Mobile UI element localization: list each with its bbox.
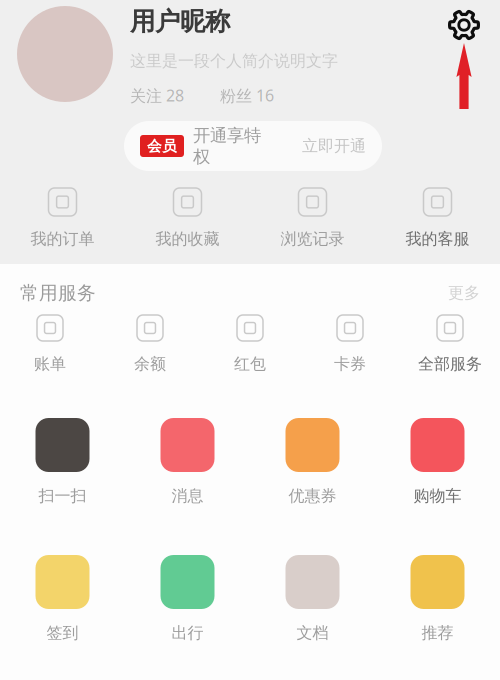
- button[interactable]: 余额: [100, 315, 200, 374]
- staticText: 我的收藏: [155, 229, 219, 249]
- staticText: 我的订单: [30, 229, 94, 249]
- staticText: 全部服务: [418, 354, 482, 374]
- staticText: 余额: [134, 354, 166, 374]
- staticText: 常用服务: [20, 281, 96, 304]
- staticText: 文档: [296, 623, 328, 643]
- button[interactable]: 我的订单: [0, 188, 125, 249]
- button[interactable]: 签到: [0, 555, 125, 643]
- staticText: 消息: [171, 486, 203, 506]
- staticText: 会员: [147, 137, 177, 155]
- button[interactable]: 扫一扫: [0, 418, 125, 506]
- button[interactable]: 推荐: [375, 555, 500, 643]
- staticText: 开通享特权: [193, 125, 261, 167]
- staticText: 红包: [234, 354, 266, 374]
- button[interactable]: 红包: [200, 315, 300, 374]
- staticText: 出行: [171, 623, 203, 643]
- staticText: 我的客服: [405, 229, 469, 249]
- staticText: 关注 28: [130, 85, 184, 106]
- button[interactable]: 全部服务: [400, 315, 500, 374]
- button[interactable]: 消息: [125, 418, 250, 506]
- button[interactable]: 账单: [0, 315, 100, 374]
- staticText: 购物车: [413, 486, 461, 506]
- staticText: 账单: [34, 354, 66, 374]
- staticText: 立即开通: [302, 136, 366, 156]
- button[interactable]: 我的客服: [375, 188, 500, 249]
- button[interactable]: 购物车: [375, 418, 500, 506]
- staticText: 更多: [448, 283, 480, 303]
- button[interactable]: 出行: [125, 555, 250, 643]
- staticText: 推荐: [421, 623, 453, 643]
- staticText: 签到: [46, 623, 78, 643]
- button[interactable]: 我的收藏: [125, 188, 250, 249]
- staticText: 浏览记录: [280, 229, 344, 249]
- button[interactable]: 更多: [448, 283, 480, 303]
- button[interactable]: Settings: [447, 8, 481, 42]
- button[interactable]: 浏览记录: [250, 188, 375, 249]
- staticText: 用户昵称: [130, 6, 230, 37]
- staticText: 优惠券: [288, 486, 336, 506]
- staticText: 这里是一段个人简介说明文字: [130, 51, 338, 71]
- button[interactable]: 文档: [250, 555, 375, 643]
- button[interactable]: 优惠券: [250, 418, 375, 506]
- staticText: 扫一扫: [38, 486, 86, 506]
- button[interactable]: 卡券: [300, 315, 400, 374]
- staticText: 粉丝 16: [220, 85, 274, 106]
- staticText: 卡券: [334, 354, 366, 374]
